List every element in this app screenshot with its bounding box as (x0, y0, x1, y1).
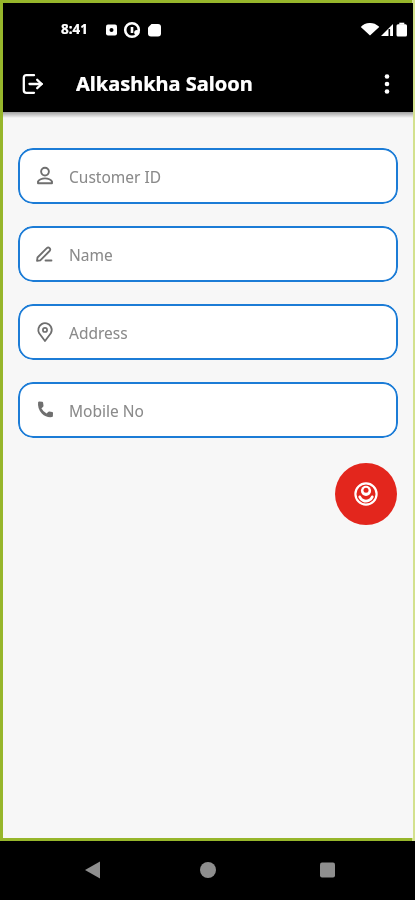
button[interactable] (139, 841, 277, 900)
button[interactable] (13, 64, 53, 104)
button[interactable] (0, 841, 139, 900)
button[interactable]: Customer ID (18, 148, 398, 204)
button[interactable]: Address (18, 304, 398, 360)
staticText: Customer ID (69, 166, 162, 187)
staticText: Mobile No (69, 400, 144, 421)
button[interactable] (277, 841, 415, 900)
button[interactable] (369, 66, 405, 102)
staticText: Alkashkha Saloon (76, 70, 253, 97)
button[interactable] (335, 463, 397, 525)
staticText: Name (69, 244, 113, 265)
button[interactable]: Mobile No (18, 382, 398, 438)
button[interactable]: Name (18, 226, 398, 282)
staticText: 8:41 (61, 20, 88, 38)
staticText: Address (69, 322, 128, 343)
